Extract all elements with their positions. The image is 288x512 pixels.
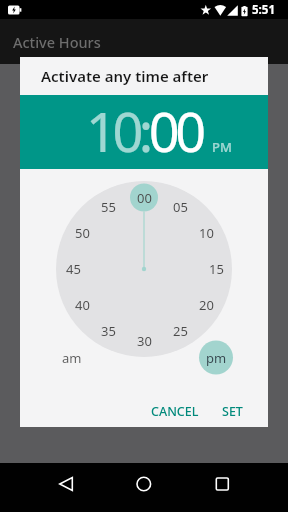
staticText: CANCEL	[151, 403, 199, 420]
staticText: PM	[212, 138, 232, 154]
button[interactable]: 10:00	[86, 94, 202, 168]
staticText: 10	[199, 224, 214, 242]
staticText: 5:51	[252, 2, 275, 18]
staticText: 10:00	[86, 94, 202, 168]
staticText: 45	[66, 260, 81, 278]
staticText: Activate any time after	[41, 66, 209, 86]
staticText: 55	[101, 198, 116, 216]
staticText: Active Hours	[13, 32, 101, 52]
staticText: 35	[101, 322, 116, 340]
button[interactable]	[204, 469, 240, 499]
staticText: 50	[75, 224, 90, 242]
button[interactable]	[126, 469, 162, 499]
staticText: SET	[222, 403, 243, 420]
button[interactable]: CANCEL	[145, 397, 205, 425]
staticText: 30	[137, 332, 152, 350]
staticText: 25	[173, 322, 188, 340]
staticText: am	[62, 349, 82, 367]
staticText: 05	[173, 198, 188, 216]
button[interactable]: am	[52, 345, 92, 371]
staticText: 00	[137, 189, 152, 207]
staticText: 20	[199, 296, 214, 314]
staticText: 40	[75, 296, 90, 314]
button[interactable]: SET	[208, 397, 257, 425]
staticText: pm	[206, 349, 227, 367]
button[interactable]: PM	[209, 138, 235, 154]
button[interactable]	[48, 469, 84, 499]
staticText: 15	[209, 260, 224, 278]
button[interactable]: pm	[196, 345, 236, 371]
